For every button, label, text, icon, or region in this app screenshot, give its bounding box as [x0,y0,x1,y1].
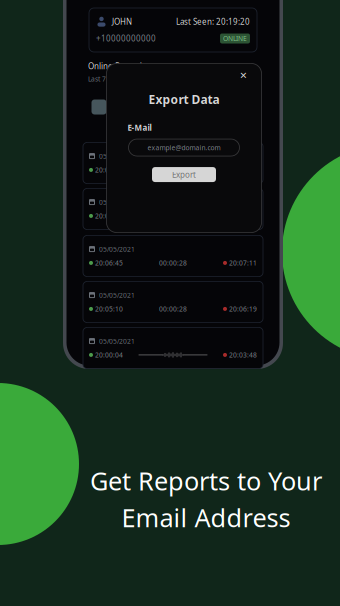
staticText: 00:00:28 [159,258,187,267]
staticText: 00:00:28 [159,165,187,174]
staticText: Get Reports to Your [90,464,322,497]
staticText: Online Records [88,61,146,71]
staticText: 05/05/2021 [99,198,135,206]
staticText: 05/05/2021 [99,245,135,253]
staticText: 20:06:45 [95,165,123,174]
staticText: Last Seen: 20:19:20 [176,16,250,27]
staticText: 20:07:11 [229,258,257,267]
button[interactable]: Export [152,167,216,182]
staticText: 20:06:45 [95,258,123,267]
staticText: 05/05/2021 [99,291,135,299]
button[interactable]: Close [238,70,248,80]
staticText: 20:00:04 [95,350,123,359]
staticText: Export [172,169,196,180]
staticText: Export Data [148,91,219,107]
staticText: 20:06:19 [229,304,257,313]
staticText: example@domain.com [147,143,220,152]
staticText: Last 7 Days [88,74,123,83]
staticText: 00:00:28 [159,304,187,313]
staticText: +10000000000 [96,33,156,44]
staticText: 20:05:10 [95,211,123,220]
staticText: 20:03:48 [229,350,257,359]
staticText: 05/05/2021 [99,337,135,345]
staticText: Email Address [121,500,290,534]
staticText: JOHN [112,16,132,27]
staticText: ONLINE [223,34,247,43]
staticText: 20:05:10 [95,304,123,313]
staticText: E-Mail [127,122,151,133]
staticText: 05/05/2021 [99,152,135,160]
staticText: ✕ [239,70,247,81]
